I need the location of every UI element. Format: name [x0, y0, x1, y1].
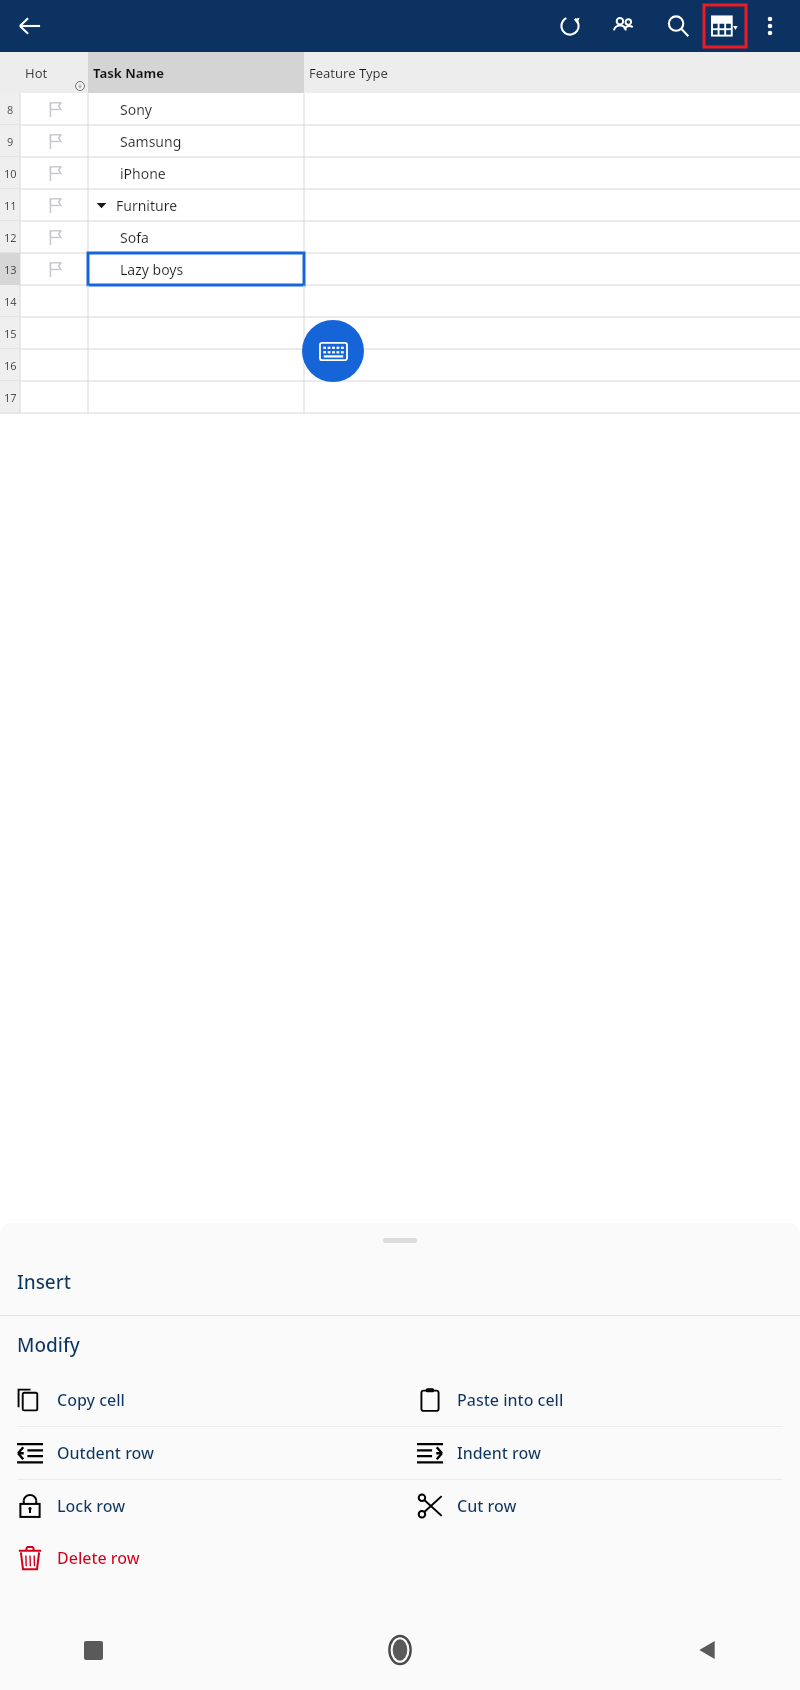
button[interactable]	[20, 93, 88, 125]
button[interactable]	[20, 253, 88, 285]
button[interactable]: iPhone	[88, 157, 304, 189]
staticText: Insert	[17, 1269, 72, 1295]
button[interactable]: Lock row	[0, 1480, 400, 1532]
staticText: Feature Type	[309, 64, 388, 82]
staticText: 17	[4, 390, 17, 405]
button[interactable]: Furniture	[88, 189, 304, 221]
staticText: 15	[4, 326, 17, 341]
button[interactable]	[88, 381, 304, 413]
button[interactable]	[304, 189, 800, 221]
button[interactable]	[20, 157, 88, 189]
button[interactable]: Outdent row	[0, 1427, 400, 1479]
staticText: Samsung	[120, 132, 182, 151]
button[interactable]: Cut row	[400, 1480, 800, 1532]
staticText: Lazy boys	[120, 260, 184, 279]
button[interactable]	[304, 125, 800, 157]
staticText: iPhone	[120, 164, 166, 183]
button[interactable]	[20, 189, 88, 221]
button[interactable]	[88, 285, 304, 317]
button[interactable]	[304, 349, 800, 381]
button[interactable]	[304, 381, 800, 413]
staticText: Task Name	[93, 64, 165, 82]
button[interactable]	[20, 125, 88, 157]
staticText: Furniture	[116, 196, 178, 215]
button[interactable]: Copy cell	[0, 1374, 400, 1426]
staticText: Paste into cell	[457, 1389, 564, 1411]
button[interactable]	[304, 317, 800, 349]
button[interactable]: Delete row	[0, 1532, 400, 1584]
staticText: 10	[4, 166, 17, 181]
button[interactable]	[88, 349, 304, 381]
button[interactable]: Refresh	[550, 6, 590, 46]
button[interactable]	[20, 285, 88, 317]
staticText: 9	[7, 134, 14, 149]
staticText: Modify	[17, 1332, 80, 1358]
staticText: Hot	[25, 64, 48, 82]
button[interactable]	[304, 93, 800, 125]
staticText: Lock row	[57, 1495, 126, 1517]
button[interactable]: Insert	[0, 1249, 800, 1315]
staticText: Copy cell	[57, 1389, 125, 1411]
button[interactable]: Samsung	[88, 125, 304, 157]
staticText: 14	[4, 294, 17, 309]
button[interactable]: Recents	[70, 1627, 116, 1673]
staticText: 16	[4, 358, 17, 373]
staticText: Indent row	[457, 1442, 541, 1464]
button[interactable]: More options	[750, 6, 790, 46]
button[interactable]: Change view	[704, 5, 746, 47]
button[interactable]: Indent row	[400, 1427, 800, 1479]
button[interactable]: Lazy boys	[88, 253, 304, 285]
button[interactable]: Sharing	[604, 6, 644, 46]
button[interactable]	[304, 253, 800, 285]
button[interactable]: Sofa	[88, 221, 304, 253]
staticText: 8	[7, 102, 14, 117]
button[interactable]: Open keyboard	[302, 320, 364, 382]
button[interactable]	[20, 381, 88, 413]
button[interactable]	[20, 317, 88, 349]
button[interactable]: Back	[684, 1627, 730, 1673]
button[interactable]	[304, 221, 800, 253]
staticText: Sony	[120, 100, 152, 119]
staticText: Delete row	[57, 1547, 140, 1569]
button[interactable]: Search	[658, 6, 698, 46]
button[interactable]	[304, 285, 800, 317]
staticText: Cut row	[457, 1495, 517, 1517]
button[interactable]: Sony	[88, 93, 304, 125]
staticText: 13	[4, 262, 17, 277]
button[interactable]	[88, 317, 304, 349]
staticText: Sofa	[120, 228, 149, 247]
button[interactable]: Home	[377, 1627, 423, 1673]
staticText: 11	[4, 198, 17, 213]
button[interactable]	[20, 349, 88, 381]
button[interactable]	[20, 221, 88, 253]
button[interactable]	[304, 157, 800, 189]
staticText: 12	[4, 230, 17, 245]
button[interactable]: Paste into cell	[400, 1374, 800, 1426]
staticText: Outdent row	[57, 1442, 154, 1464]
button[interactable]: Back	[8, 4, 52, 48]
